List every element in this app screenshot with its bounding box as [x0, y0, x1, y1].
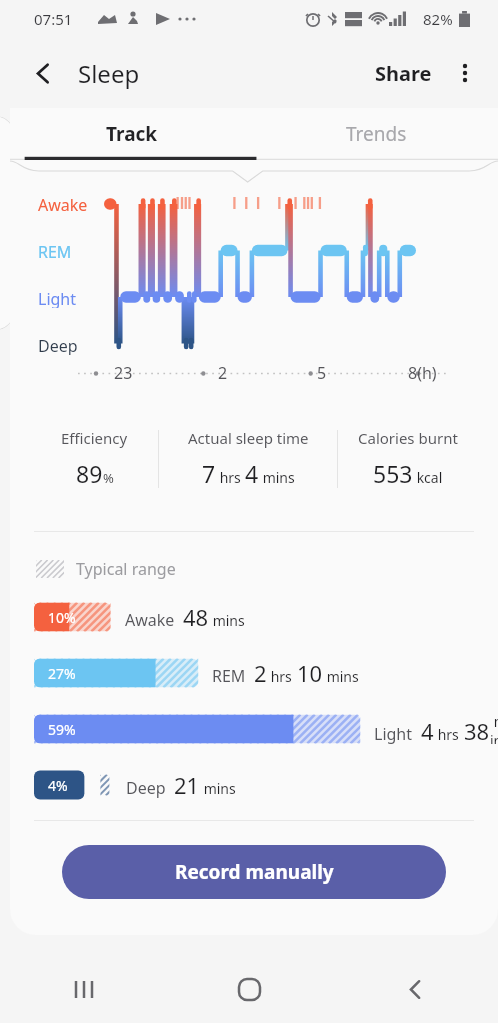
staticText: Calories burnt [358, 428, 458, 448]
staticText: 4% [48, 776, 68, 795]
staticText: 8(h) [408, 362, 437, 384]
staticText: REM [38, 241, 72, 261]
staticText: Deep [126, 777, 166, 799]
button[interactable]: More options [444, 52, 486, 94]
button[interactable]: Back [332, 955, 498, 1023]
staticText: Actual sleep time [188, 428, 309, 448]
staticText: mins [209, 611, 245, 630]
button[interactable]: Record manually [62, 845, 446, 899]
staticText: 27% [48, 664, 76, 683]
staticText: 4 [245, 458, 259, 489]
staticText: Light [374, 723, 413, 745]
staticText: 89 [76, 458, 103, 489]
staticText: 07:51 [34, 9, 73, 29]
staticText: mins [490, 712, 498, 744]
staticText: hrs [434, 725, 459, 744]
staticText: 7 [202, 458, 216, 489]
staticText: hrs [267, 667, 292, 686]
staticText: mins [200, 779, 236, 798]
staticText: Trends [346, 121, 407, 147]
staticText: Track [106, 121, 158, 147]
staticText: 21 [174, 770, 200, 800]
staticText: Share [375, 60, 432, 87]
staticText: 23 [114, 362, 133, 384]
staticText: 48 [183, 602, 209, 632]
staticText: 2 [218, 362, 228, 384]
staticText: 10 [297, 658, 323, 688]
button[interactable]: Share [367, 52, 440, 95]
button[interactable]: Recent apps [0, 955, 166, 1023]
staticText: mins [259, 468, 295, 487]
staticText: REM [212, 665, 246, 687]
staticText: 10% [48, 608, 76, 627]
button[interactable]: 4% [10, 768, 498, 802]
button[interactable]: Trends [254, 108, 498, 160]
staticText: 38 [464, 716, 490, 746]
staticText: 4 [421, 716, 434, 746]
button[interactable]: 10% [10, 600, 498, 634]
staticText: 59% [48, 720, 76, 739]
button[interactable]: Back [20, 50, 66, 96]
staticText: Record manually [175, 859, 334, 885]
staticText: kcal [413, 468, 443, 487]
staticText: Light [38, 288, 77, 308]
staticText: Deep [38, 335, 78, 355]
button[interactable]: Track [10, 108, 254, 160]
staticText: 553 [373, 458, 413, 489]
staticText: 5 [317, 362, 327, 384]
staticText: Awake [38, 194, 88, 214]
button[interactable]: 59% [10, 712, 498, 746]
staticText: Typical range [76, 558, 176, 580]
button[interactable]: Home [166, 955, 332, 1023]
staticText: Sleep [78, 57, 140, 90]
staticText: Awake [125, 609, 175, 631]
staticText: mins [323, 667, 359, 686]
staticText: hrs [216, 468, 245, 487]
button[interactable]: 27% [10, 656, 498, 690]
staticText: 82% [423, 9, 453, 29]
staticText: % [103, 469, 114, 487]
staticText: Efficiency [61, 428, 128, 448]
staticText: 2 [254, 658, 267, 688]
